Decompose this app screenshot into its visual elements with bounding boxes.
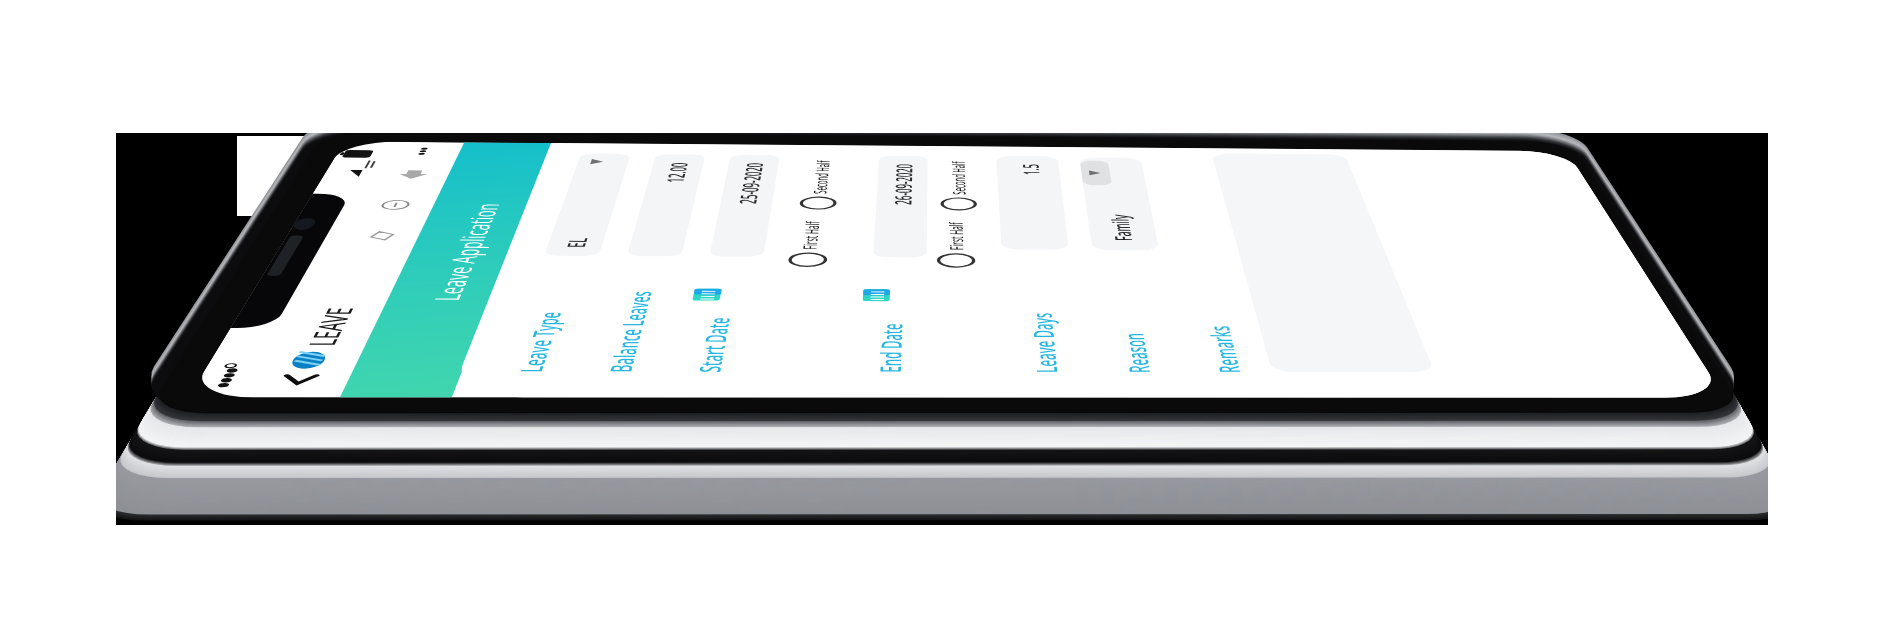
button[interactable] bbox=[0, 0, 1900, 627]
